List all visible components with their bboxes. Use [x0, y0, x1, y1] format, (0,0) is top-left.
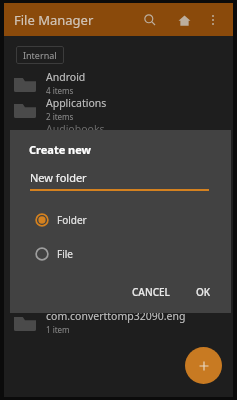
button[interactable]: Folder: [25, 207, 219, 233]
staticText: Internal: [23, 49, 57, 61]
button[interactable]: Car Photo Editor: [4, 252, 233, 280]
staticText: 0 items: [46, 189, 74, 200]
button[interactable]: Applications: [4, 96, 233, 122]
button[interactable]: com.converttomp32090.eng: [4, 308, 233, 336]
button[interactable]: Search: [137, 7, 163, 33]
staticText: com.converttomp32090.eng: [46, 309, 186, 323]
staticText: Android: [46, 70, 86, 84]
button[interactable]: com: [4, 280, 233, 308]
staticText: Audiobooks: [46, 122, 105, 136]
staticText: Create new: [29, 142, 92, 157]
staticText: 0 items: [46, 241, 74, 252]
button[interactable]: OK: [190, 281, 217, 303]
staticText: 4 items: [46, 85, 74, 96]
staticText: File Manager: [14, 11, 94, 29]
button[interactable]: Calculator: [4, 226, 233, 252]
staticText: Car Photo Editor: [46, 253, 128, 267]
button[interactable]: Internal: [16, 46, 64, 64]
button[interactable]: Bluetooth: [4, 200, 233, 226]
staticText: 0 items: [46, 215, 74, 226]
button[interactable]: CANCEL: [126, 281, 176, 303]
staticText: File: [57, 247, 73, 261]
staticText: 0 items: [46, 137, 74, 148]
staticText: 1 item: [46, 324, 70, 335]
button[interactable]: Books: [4, 174, 233, 200]
staticText: CANCEL: [132, 285, 170, 299]
staticText: New folder: [30, 170, 87, 185]
button[interactable]: Home: [171, 7, 197, 33]
staticText: Backups: [46, 148, 88, 162]
button[interactable]: More options: [201, 8, 225, 32]
staticText: 2 items: [46, 111, 74, 122]
button[interactable]: File: [25, 241, 219, 267]
staticText: OK: [196, 285, 211, 299]
button[interactable]: Android: [4, 70, 233, 96]
button[interactable]: Create new: [185, 347, 222, 384]
staticText: Books: [46, 174, 77, 188]
staticText: Applications: [46, 96, 107, 110]
button[interactable]: Backups: [4, 148, 233, 174]
button[interactable]: Audiobooks: [4, 122, 233, 148]
staticText: Folder: [57, 213, 87, 227]
